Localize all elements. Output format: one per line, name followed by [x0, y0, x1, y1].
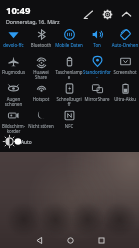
staticText: MirrorShare	[83, 96, 111, 102]
staticText: devolo-ffc	[0, 42, 27, 48]
button[interactable]: Bildschirm- korder	[0, 107, 27, 134]
button[interactable]: Nicht stören	[27, 107, 55, 134]
button[interactable]: Letzte Apps	[94, 233, 108, 247]
staticText: Nicht stören	[27, 123, 55, 129]
button[interactable]: Auto	[21, 136, 134, 148]
button[interactable]: Einklappen	[117, 5, 136, 24]
button[interactable]: Huawei Share	[27, 53, 55, 80]
button[interactable]: Mobile Daten	[55, 26, 83, 53]
staticText: Screenshot	[111, 69, 139, 75]
staticText: Augen schonen	[0, 96, 27, 107]
button[interactable]: devolo-ffc	[0, 26, 27, 53]
staticText: Bluetooth	[27, 42, 55, 48]
button[interactable]: Schnellzugriff	[55, 80, 83, 107]
staticText: Auto-Drehen	[111, 42, 139, 48]
staticText: Donnerstag, 16. März	[6, 18, 79, 25]
button[interactable]: Ultra-Akku	[111, 80, 139, 107]
staticText: 10:49	[6, 4, 79, 17]
staticText: Huawei Share	[27, 69, 55, 80]
button[interactable]: Startseite	[63, 233, 77, 247]
staticText: NFC	[55, 123, 83, 129]
button[interactable]: NFC	[55, 107, 83, 134]
staticText: Ton	[83, 42, 111, 48]
staticText: Schnellzugriff	[55, 96, 83, 107]
button[interactable]: Einstellungen	[98, 5, 117, 24]
button[interactable]: Taschenlampe	[55, 53, 83, 80]
staticText: Taschenlampe	[55, 69, 83, 80]
staticText: Bildschirm- korder	[0, 123, 27, 134]
button[interactable]: Screenshot	[111, 53, 139, 80]
staticText: Hotspot	[27, 96, 55, 102]
staticText: Flugmodus	[0, 69, 27, 75]
button[interactable]: Ton	[83, 26, 111, 53]
button[interactable]: MirrorShare	[83, 80, 111, 107]
button[interactable]: Bluetooth	[27, 26, 55, 53]
button[interactable]: Hotspot	[27, 80, 55, 107]
button[interactable]: Zurück	[32, 233, 46, 247]
staticText: Auto	[21, 139, 134, 146]
button[interactable]: Flugmodus	[0, 53, 27, 80]
staticText: Standortinfor- mationen	[83, 69, 111, 80]
button[interactable]: Auto-Drehen	[111, 26, 139, 53]
button[interactable]: Bearbeiten	[79, 5, 98, 24]
staticText: Mobile Daten	[55, 42, 83, 48]
staticText: Ultra-Akku	[111, 96, 139, 102]
button[interactable]: Augen schonen	[0, 80, 27, 107]
button[interactable]: Standortinfor- mationen	[83, 53, 111, 80]
